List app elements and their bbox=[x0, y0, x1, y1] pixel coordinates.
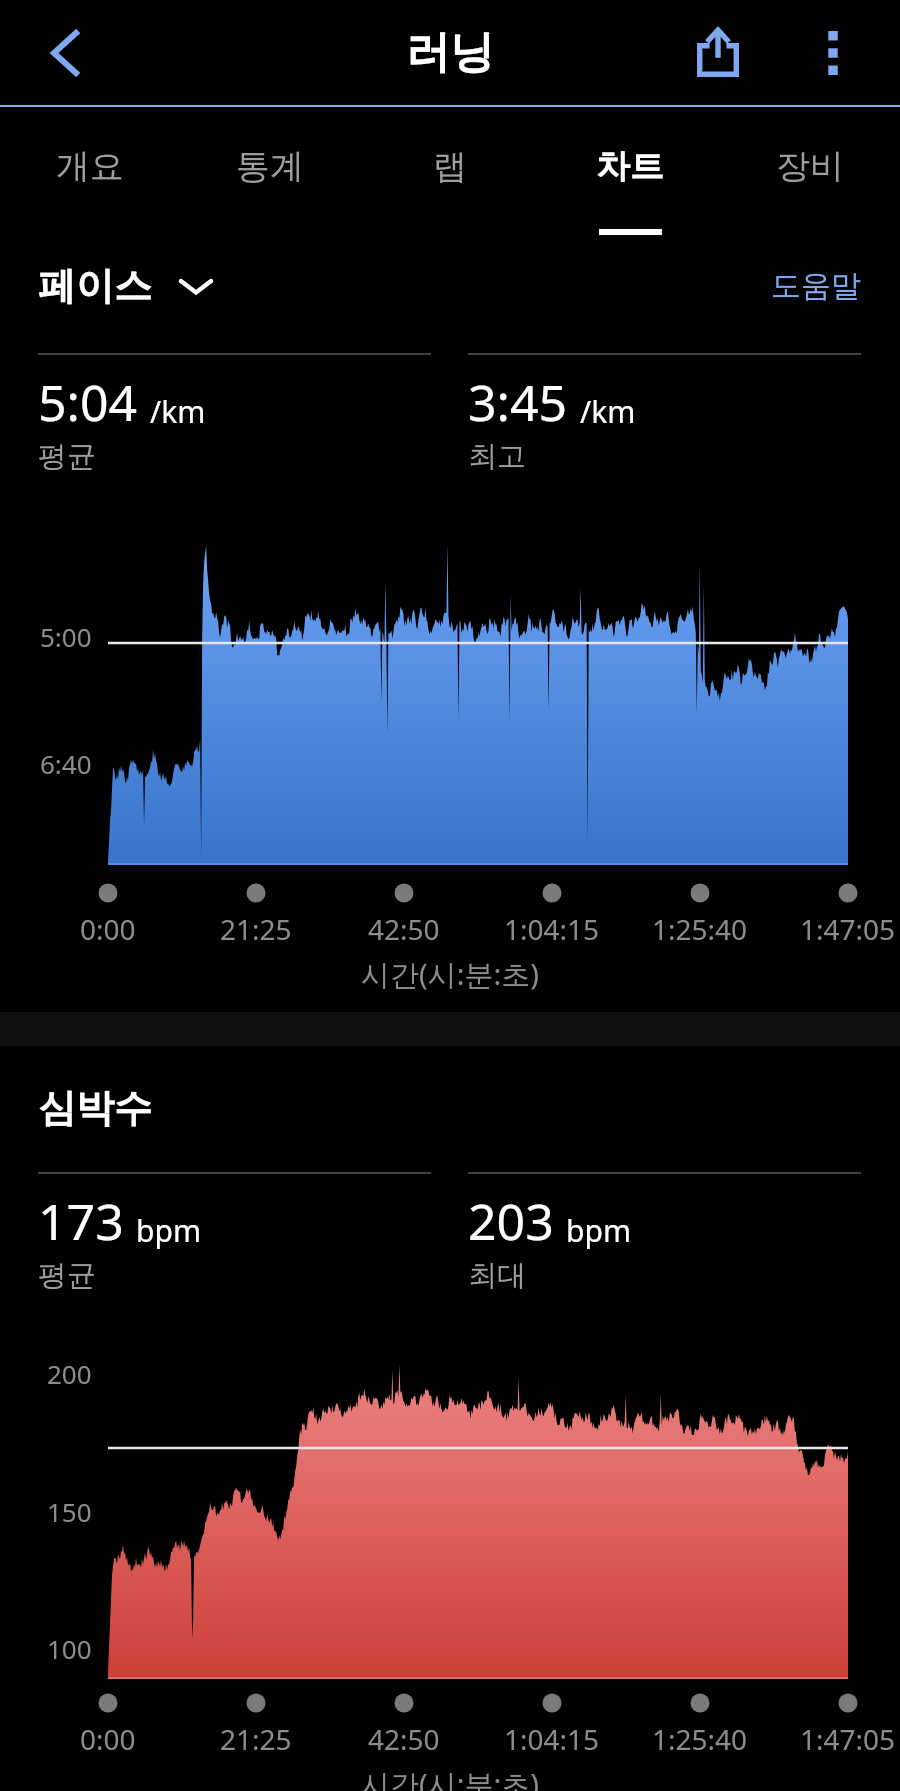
staticText: 200 bbox=[47, 1356, 92, 1391]
staticText: 1:25:40 bbox=[652, 1720, 748, 1758]
staticText: 203 bbox=[468, 1187, 554, 1255]
staticText: 0:00 bbox=[80, 1720, 136, 1758]
button[interactable]: Share bbox=[665, 0, 771, 105]
staticText: 21:25 bbox=[220, 910, 292, 948]
button[interactable]: 랩 bbox=[360, 107, 540, 237]
staticText: 1:47:05 bbox=[800, 910, 896, 948]
staticText: 3:45 bbox=[468, 368, 568, 436]
staticText: 시간(시:분:초) bbox=[361, 1764, 539, 1791]
staticText: 차트 bbox=[596, 145, 664, 188]
staticText: 최고 bbox=[468, 438, 526, 475]
staticText: 6:40 bbox=[40, 746, 92, 781]
staticText: 5:00 bbox=[40, 619, 92, 654]
staticText: 평균 bbox=[38, 438, 96, 475]
staticText: 150 bbox=[47, 1494, 92, 1529]
staticText: 러닝 bbox=[406, 25, 494, 80]
staticText: 100 bbox=[47, 1631, 92, 1666]
staticText: 1:47:05 bbox=[800, 1720, 896, 1758]
button[interactable]: 통계 bbox=[180, 107, 360, 237]
staticText: 1:25:40 bbox=[652, 910, 748, 948]
staticText: 도움말 bbox=[771, 267, 861, 305]
staticText: 개요 bbox=[56, 145, 124, 188]
button[interactable]: 페이스 bbox=[38, 262, 214, 310]
staticText: 통계 bbox=[236, 145, 304, 188]
staticText: 시간(시:분:초) bbox=[361, 954, 539, 994]
button[interactable]: 도움말 bbox=[771, 267, 861, 305]
staticText: 5:04 bbox=[38, 368, 138, 436]
button[interactable]: Back bbox=[12, 0, 117, 105]
staticText: /km bbox=[150, 391, 206, 432]
staticText: 1:04:15 bbox=[504, 1720, 600, 1758]
staticText: bpm bbox=[566, 1210, 631, 1251]
staticText: 21:25 bbox=[220, 1720, 292, 1758]
staticText: /km bbox=[580, 391, 636, 432]
staticText: 심박수 bbox=[38, 1084, 152, 1132]
button[interactable]: 장비 bbox=[720, 107, 900, 237]
staticText: 페이스 bbox=[38, 262, 152, 310]
staticText: bpm bbox=[136, 1210, 201, 1251]
staticText: 최대 bbox=[468, 1257, 526, 1294]
staticText: 42:50 bbox=[368, 910, 440, 948]
button[interactable]: 차트 bbox=[540, 107, 720, 237]
staticText: 장비 bbox=[776, 145, 844, 188]
staticText: 0:00 bbox=[80, 910, 136, 948]
staticText: 173 bbox=[38, 1187, 124, 1255]
button[interactable]: More options bbox=[783, 0, 883, 105]
staticText: 1:04:15 bbox=[504, 910, 600, 948]
button[interactable]: 개요 bbox=[0, 107, 180, 237]
staticText: 42:50 bbox=[368, 1720, 440, 1758]
staticText: 평균 bbox=[38, 1257, 96, 1294]
staticText: 랩 bbox=[433, 145, 467, 188]
